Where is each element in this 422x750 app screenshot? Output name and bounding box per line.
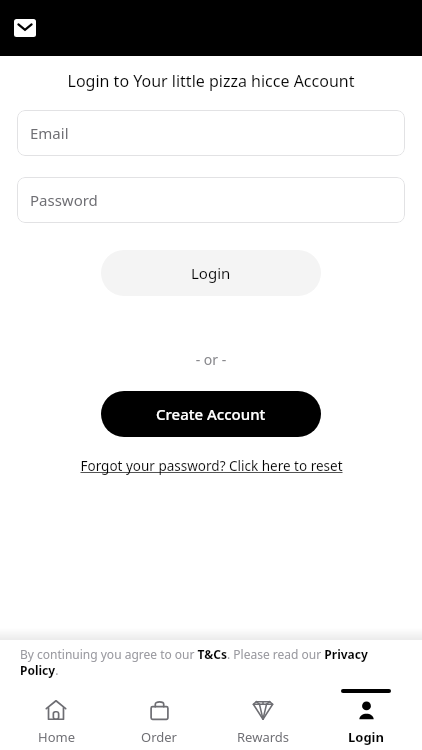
- staticText: Order: [141, 728, 177, 746]
- staticText: Email: [30, 123, 69, 143]
- button[interactable]: Forgot your password? Click here to rese…: [74, 455, 349, 477]
- staticText: - or -: [0, 350, 422, 369]
- button[interactable]: Login: [101, 250, 321, 296]
- staticText: Rewards: [237, 728, 290, 746]
- staticText: Forgot your password? Click here to rese…: [80, 457, 343, 475]
- button[interactable]: Email: [17, 110, 405, 156]
- staticText: Password: [30, 190, 98, 210]
- staticText: Home: [38, 728, 75, 746]
- button[interactable]: Rewards: [215, 688, 311, 750]
- staticText: Login: [348, 728, 384, 746]
- button[interactable]: Create Account: [101, 391, 321, 437]
- button[interactable]: Home: [8, 688, 104, 750]
- button[interactable]: Password: [17, 177, 405, 223]
- button[interactable]: Order: [111, 688, 207, 750]
- staticText: Login: [191, 263, 231, 283]
- staticText: By continuing you agree to our T&Cs. Ple…: [20, 646, 392, 678]
- button[interactable]: Messages: [14, 19, 36, 37]
- staticText: Create Account: [156, 404, 266, 424]
- button[interactable]: Login: [318, 688, 414, 750]
- staticText: Login to Your little pizza hicce Account: [0, 70, 422, 92]
